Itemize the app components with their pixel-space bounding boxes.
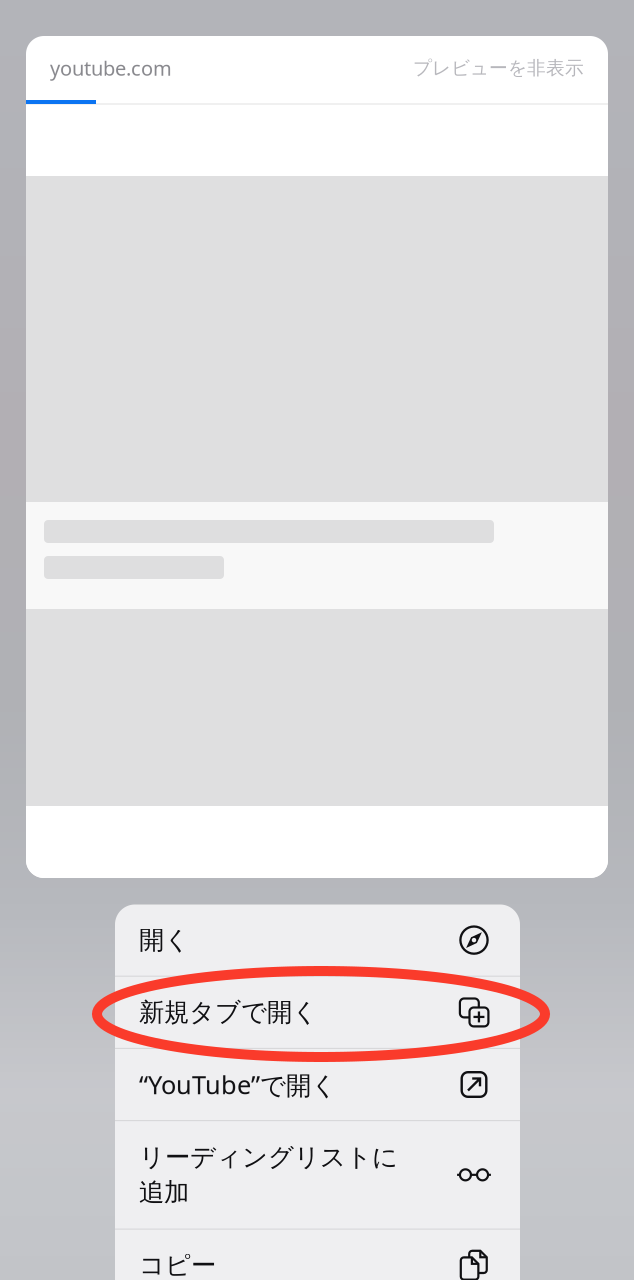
button[interactable]: 新規タブで開く — [115, 977, 520, 1048]
button[interactable]: リーディングリストに追加 — [115, 1121, 520, 1229]
staticText: 新規タブで開く — [139, 997, 318, 1028]
button[interactable]: “YouTube”で開く — [115, 1049, 520, 1120]
staticText: youtube.com — [50, 55, 172, 81]
staticText: プレビューを非表示 — [413, 56, 584, 79]
staticText: 開く — [139, 924, 190, 956]
staticText: コピー — [139, 1250, 216, 1280]
staticText: 追加 — [139, 1177, 189, 1208]
staticText: “YouTube”で開く — [139, 1068, 337, 1101]
staticText: リーディングリストに — [139, 1142, 398, 1173]
button[interactable]: 開く — [115, 904, 520, 976]
button[interactable]: コピー — [115, 1230, 520, 1280]
